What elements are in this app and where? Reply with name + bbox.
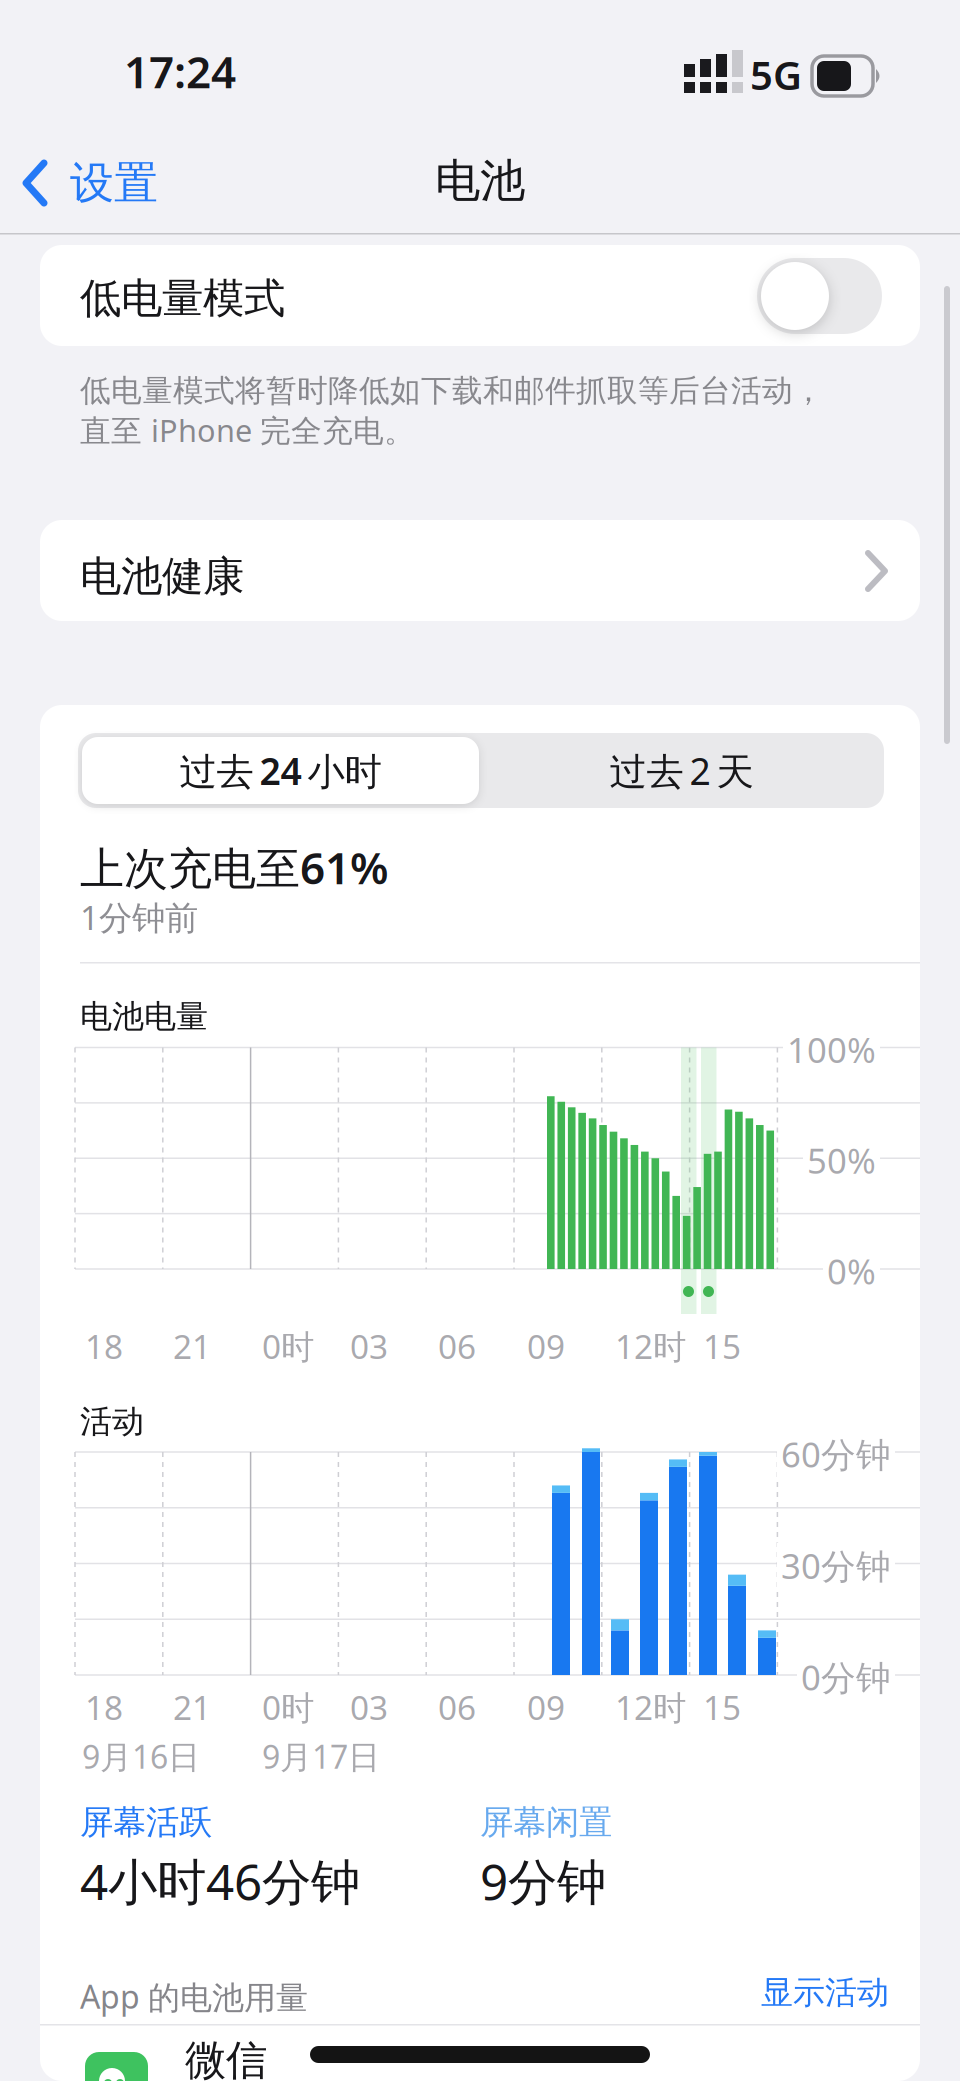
staticText: 1分钟前 (80, 895, 198, 939)
staticText: 电池健康 (80, 551, 244, 602)
staticText: 18 (85, 1685, 123, 1729)
staticText: 12时 (615, 1685, 686, 1729)
staticText: 15 (703, 1685, 741, 1729)
button[interactable]: 设置 (22, 156, 158, 210)
staticText: 06 (438, 1324, 476, 1368)
staticText: 0时 (262, 1324, 314, 1368)
button[interactable]: 显示活动 (761, 1973, 889, 2012)
staticText: 0分钟 (801, 1654, 891, 1700)
staticText: 设置 (70, 156, 158, 210)
staticText: 50% (807, 1137, 876, 1183)
staticText: 30分钟 (781, 1542, 891, 1588)
staticText: 上次充电至61% (80, 838, 389, 896)
button[interactable]: 过去 24 小时 (82, 737, 479, 804)
button[interactable]: 过去 2 天 (483, 737, 880, 804)
staticText: 12时 (615, 1324, 686, 1368)
staticText: 9分钟 (480, 1848, 606, 1913)
staticText: 03 (350, 1685, 388, 1729)
staticText: 09 (527, 1685, 565, 1729)
staticText: 06 (438, 1685, 476, 1729)
staticText: 4小时46分钟 (80, 1848, 360, 1913)
staticText: 电池 (435, 153, 525, 209)
staticText: 过去 24 小时 (179, 746, 381, 795)
staticText: App 的电池用量 (80, 1975, 308, 2018)
staticText: 电池电量 (80, 997, 208, 1036)
staticText: 活动 (80, 1402, 144, 1441)
staticText: 17:24 (124, 42, 236, 100)
staticText: 9月17日 (262, 1735, 380, 1777)
staticText: 21 (173, 1324, 211, 1368)
staticText: 5G (750, 48, 802, 101)
staticText: 03 (350, 1324, 388, 1368)
staticText: 60分钟 (781, 1431, 891, 1477)
staticText: 微信 (185, 2035, 267, 2081)
staticText: 15 (703, 1324, 741, 1368)
staticText: 100% (787, 1026, 876, 1072)
staticText: 0% (827, 1248, 876, 1294)
staticText: 9月16日 (82, 1735, 200, 1777)
staticText: 屏幕活跃 (80, 1802, 212, 1843)
staticText: 18 (85, 1324, 123, 1368)
staticText: 低电量模式 (80, 273, 285, 324)
staticText: 屏幕闲置 (480, 1802, 612, 1843)
button[interactable]: 微信 (40, 705, 920, 761)
staticText: 0时 (262, 1685, 314, 1729)
staticText: 过去 2 天 (609, 746, 753, 795)
staticText: 21 (173, 1685, 211, 1729)
staticText: 显示活动 (761, 1973, 889, 2012)
button[interactable]: 电池健康 (40, 520, 920, 621)
staticText: 低电量模式将暂时降低如下载和邮件抓取等后台活动， 直至 iPhone 完全充电。 (80, 372, 824, 450)
button[interactable]: 低电量模式 (757, 258, 882, 334)
staticText: 09 (527, 1324, 565, 1368)
